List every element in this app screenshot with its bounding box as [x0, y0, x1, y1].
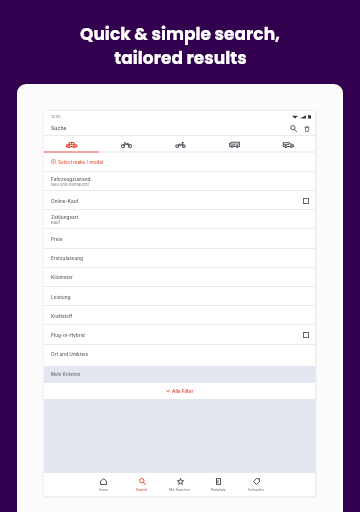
staticText: 12:00	[51, 114, 61, 119]
button[interactable]: Preis	[44, 229, 315, 248]
staticText: Alle Filter	[172, 388, 194, 394]
button[interactable]: Cars	[44, 138, 99, 151]
button[interactable]: Scooters	[153, 138, 207, 151]
staticText: Suche	[51, 125, 67, 131]
staticText: Erstzulassung	[51, 255, 84, 261]
button[interactable]: Zahlungsart	[44, 210, 315, 229]
staticText: Leistung	[51, 294, 71, 300]
button[interactable]: Parkplatz	[199, 473, 237, 496]
staticText: Online-Kauf	[51, 198, 79, 204]
staticText: Quick & simple search,	[80, 22, 280, 46]
staticText: Mis Searches	[169, 488, 191, 492]
staticText: tailored results	[114, 46, 247, 70]
staticText: Preis	[51, 236, 63, 242]
staticText: Plug-in-Hybrid	[51, 332, 85, 338]
button[interactable]: Vans	[261, 138, 315, 151]
button[interactable]: Motorbikes	[99, 138, 153, 151]
button[interactable]: Plug-in-Hybrid	[44, 325, 315, 344]
staticText: Home	[99, 488, 109, 492]
staticText: Kilometer	[51, 274, 73, 280]
staticText: Ort und Umkreis	[51, 351, 89, 357]
button[interactable]: Trucks	[207, 138, 261, 151]
button[interactable]: Mis Searches	[161, 473, 199, 496]
staticText: Verkaufen	[248, 488, 264, 492]
button[interactable]: Fahrzeugzustand	[44, 172, 315, 191]
staticText: Select make / model	[58, 159, 104, 165]
button[interactable]: Search	[287, 122, 300, 135]
button[interactable]: Home	[84, 473, 123, 496]
button[interactable]: Ort und Umkreis	[44, 344, 315, 363]
staticText: Parkplatz	[211, 488, 226, 492]
staticText: Mehr Kriterien	[51, 372, 81, 377]
staticText: Kraftstoff	[51, 313, 73, 319]
staticText: Neu und Gebraucht	[51, 182, 89, 187]
staticText: Zahlungsart	[51, 214, 79, 220]
button[interactable]: Verkaufen	[237, 473, 275, 496]
button[interactable]: Search	[123, 473, 161, 496]
button[interactable]: Delete saved search	[300, 122, 313, 135]
button[interactable]: Kilometer	[44, 267, 315, 286]
staticText: Search	[136, 488, 148, 492]
button[interactable]: Kraftstoff	[44, 306, 315, 325]
button[interactable]: Select make / model	[44, 152, 315, 171]
staticText: Kauf	[51, 220, 60, 225]
button[interactable]: Erstzulassung	[44, 248, 315, 267]
staticText: Fahrzeugzustand	[51, 176, 91, 182]
button[interactable]: Online-Kauf	[44, 191, 315, 210]
button[interactable]: Leistung	[44, 287, 315, 306]
button[interactable]: Alle Filter	[44, 383, 315, 399]
